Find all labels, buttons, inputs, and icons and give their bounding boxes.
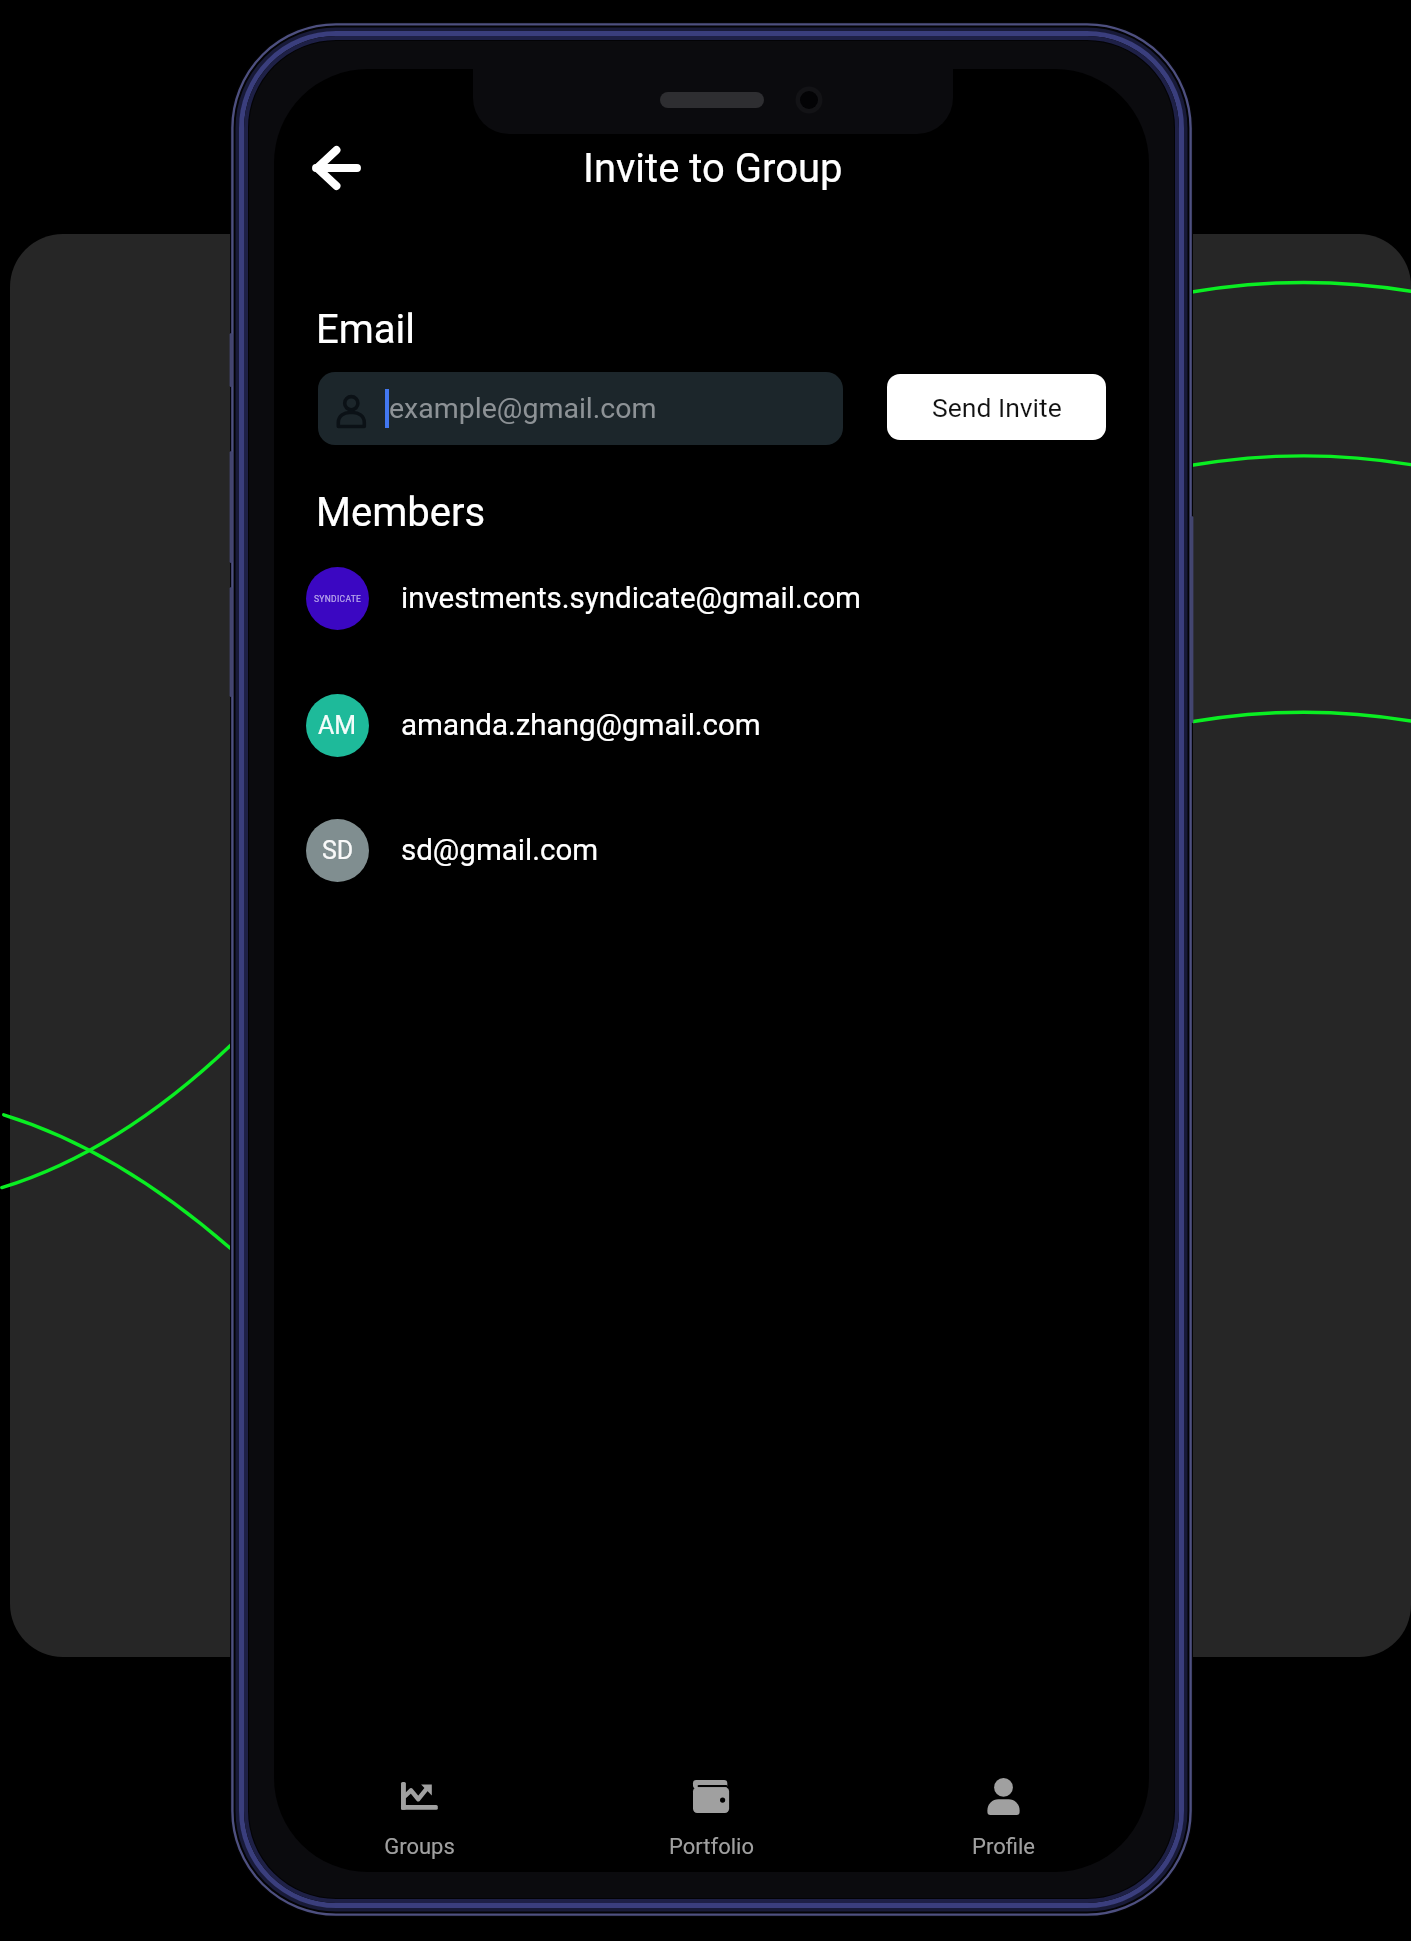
staticText: Profile: [972, 1834, 1035, 1860]
staticText: Email: [316, 306, 416, 353]
button[interactable]: Portfolio: [565, 1776, 857, 1872]
staticText: Portfolio: [669, 1834, 754, 1860]
staticText: AM: [318, 711, 357, 740]
staticText: sd@gmail.com: [401, 833, 599, 868]
staticText: Members: [316, 489, 486, 536]
button[interactable]: SYNDICATE: [274, 556, 1149, 640]
button[interactable]: Send Invite: [887, 374, 1106, 440]
button[interactable]: example@gmail.com: [318, 372, 843, 445]
staticText: Send Invite: [932, 392, 1062, 423]
staticText: amanda.zhang@gmail.com: [401, 708, 761, 743]
button[interactable]: AM: [274, 683, 1149, 767]
button[interactable]: Profile: [857, 1776, 1149, 1872]
button[interactable]: Back: [300, 132, 372, 204]
button[interactable]: SD: [274, 808, 1149, 892]
staticText: SYNDICATE: [314, 594, 362, 604]
staticText: SD: [322, 836, 354, 865]
staticText: example@gmail.com: [389, 392, 657, 425]
button[interactable]: Groups: [274, 1776, 565, 1872]
staticText: Invite to Group: [583, 145, 843, 192]
staticText: investments.syndicate@gmail.com: [401, 581, 861, 616]
staticText: Groups: [384, 1834, 455, 1860]
